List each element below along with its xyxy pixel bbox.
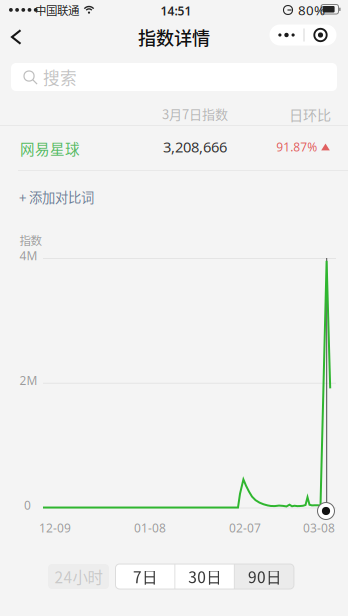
staticText: 2M xyxy=(19,372,37,388)
staticText: 01-08 xyxy=(134,520,166,536)
staticText: 90日 xyxy=(248,565,281,588)
staticText: 30日 xyxy=(188,565,221,588)
staticText: 3月7日指数 xyxy=(162,104,228,123)
button[interactable]: More xyxy=(269,24,303,45)
staticText: + 添加对比词 xyxy=(19,187,94,206)
staticText: 日环比 xyxy=(289,104,331,124)
staticText: 91.87% xyxy=(276,139,317,155)
button[interactable]: + 添加对比词 xyxy=(0,171,348,217)
button[interactable]: 搜索 xyxy=(11,63,337,91)
button[interactable]: 90日 xyxy=(235,564,294,589)
button[interactable]: 24小时 xyxy=(48,564,109,589)
staticText: 02-07 xyxy=(229,520,261,536)
staticText: 网易星球 xyxy=(20,138,80,159)
staticText: 03-08 xyxy=(303,520,335,536)
staticText: 指数 xyxy=(19,232,41,248)
button[interactable]: 30日 xyxy=(175,564,234,589)
staticText: 12-09 xyxy=(39,520,71,536)
staticText: 4M xyxy=(19,247,37,263)
button[interactable]: Close xyxy=(304,24,336,45)
staticText: 指数详情 xyxy=(138,24,210,50)
staticText: 搜索 xyxy=(43,65,77,89)
staticText: 80% xyxy=(298,1,325,19)
staticText: 3,208,666 xyxy=(163,137,227,156)
button[interactable]: Back xyxy=(0,22,34,58)
button[interactable]: 7日 xyxy=(115,564,174,589)
staticText: 7日 xyxy=(133,565,157,588)
staticText: 0 xyxy=(24,497,31,513)
staticText: 14:51 xyxy=(160,3,191,19)
staticText: 24小时 xyxy=(54,565,102,588)
staticText: 中国联通 xyxy=(35,2,79,18)
button[interactable]: 网易星球 xyxy=(0,126,348,170)
